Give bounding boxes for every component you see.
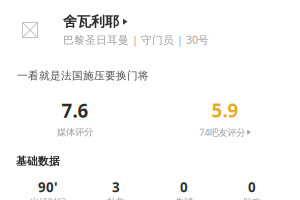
- staticText: 90': [38, 178, 58, 196]
- staticText: 媒体评分: [57, 126, 93, 138]
- image: [22, 22, 38, 38]
- staticText: 74吧友评分: [199, 126, 245, 139]
- button[interactable]: 5.9: [150, 97, 300, 138]
- button[interactable]: 舍瓦利耶: [63, 13, 127, 30]
- staticText: 失球: [175, 196, 193, 200]
- staticText: 扑救: [107, 196, 125, 200]
- staticText: 一看就是法国施压要换门将: [17, 69, 149, 82]
- staticText: 0: [248, 178, 256, 196]
- staticText: 巴黎圣日耳曼 | 守门员 | 30号: [63, 32, 209, 47]
- staticText: 出场时间: [30, 196, 66, 200]
- staticText: 舍瓦利耶: [63, 13, 119, 30]
- staticText: 5.9: [211, 97, 238, 123]
- staticText: 助攻: [243, 196, 261, 200]
- staticText: 7.6: [61, 98, 88, 123]
- staticText: 基础数据: [16, 155, 60, 168]
- staticText: 3: [112, 178, 120, 196]
- staticText: 0: [180, 178, 188, 196]
